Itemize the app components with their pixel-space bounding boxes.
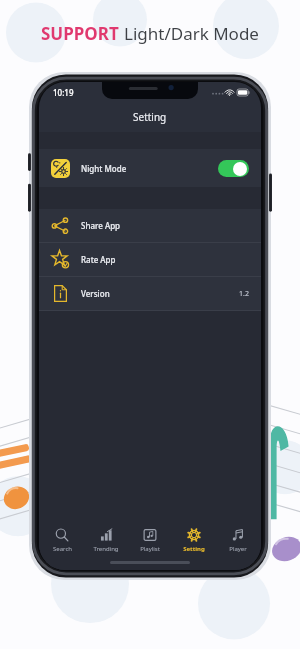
staticText: Playlist (140, 545, 160, 553)
staticText: Version (81, 288, 239, 299)
staticText: Trending (93, 545, 119, 553)
button[interactable]: Playlist (129, 522, 171, 558)
staticText: Share App (81, 220, 249, 231)
staticText: Search (53, 545, 72, 553)
button[interactable]: Version (39, 277, 261, 310)
staticText: Night Mode (81, 163, 218, 174)
button[interactable]: Setting (173, 522, 215, 558)
staticText: Player (229, 545, 247, 553)
button[interactable]: Trending (85, 522, 127, 558)
button[interactable]: Rate App (39, 243, 261, 276)
button[interactable]: Search (41, 522, 83, 558)
staticText: Rate App (81, 254, 249, 265)
button[interactable]: Night mode toggle (218, 160, 249, 177)
staticText: 10:19 (53, 87, 74, 98)
staticText: 1.2 (239, 289, 249, 299)
staticText: SUPPORT (41, 22, 119, 45)
staticText: Setting (183, 545, 205, 553)
staticText: Setting (133, 110, 167, 124)
staticText: Light/Dark Mode (124, 22, 259, 45)
button[interactable]: Player (217, 522, 259, 558)
button[interactable]: Night Mode (39, 149, 261, 187)
button[interactable]: Share App (39, 209, 261, 242)
